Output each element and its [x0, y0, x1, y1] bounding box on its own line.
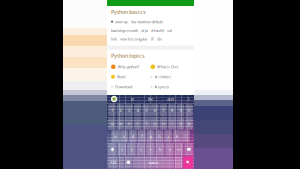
button[interactable]: i	[168, 117, 176, 129]
button[interactable]: Architect	[150, 72, 190, 82]
staticText: a	[114, 134, 116, 139]
button[interactable]: to	[129, 96, 136, 102]
button[interactable]: e	[125, 117, 133, 129]
button[interactable]: b	[156, 143, 164, 155]
button[interactable]: Why python?	[111, 62, 150, 72]
button[interactable]: m	[175, 143, 183, 155]
staticText: to	[131, 96, 134, 102]
button[interactable]: 6	[151, 104, 159, 116]
button[interactable]: 3	[125, 104, 133, 116]
button[interactable]: the	[146, 96, 155, 102]
button[interactable]: Read	[111, 72, 150, 82]
button[interactable]: Keyboard theme	[110, 95, 119, 103]
button[interactable]: and	[165, 96, 175, 102]
staticText: IF	[151, 36, 154, 42]
button[interactable]: t	[142, 117, 150, 129]
button[interactable]: 0	[185, 104, 193, 116]
button[interactable]: x	[127, 143, 136, 155]
staticText: What is Dict	[157, 64, 178, 69]
button[interactable]: Delete	[184, 143, 193, 155]
button[interactable]: j	[164, 130, 172, 142]
staticText: g	[149, 134, 151, 139]
button[interactable]: space	[133, 156, 174, 168]
staticText: Read	[117, 74, 125, 79]
button[interactable]: y	[151, 117, 159, 129]
button[interactable]: r	[134, 117, 141, 129]
staticText: u	[162, 121, 164, 126]
staticText: l	[185, 134, 186, 139]
staticText: link	[111, 36, 117, 42]
button[interactable]: IF	[151, 36, 154, 42]
button[interactable]: p	[185, 117, 193, 129]
button[interactable]: val	[167, 28, 172, 33]
button[interactable]: g	[147, 130, 154, 142]
button[interactable]: 1	[108, 104, 116, 116]
button[interactable]: 4	[134, 104, 141, 116]
button[interactable]: unwrap	[111, 19, 128, 24]
staticText: h	[158, 134, 160, 139]
button[interactable]: s	[120, 130, 128, 142]
button[interactable]: div	[157, 36, 162, 42]
button[interactable]: u	[160, 117, 167, 129]
staticText: y	[154, 121, 156, 126]
staticText: bad align month	[111, 28, 138, 33]
staticText: has boolean default	[131, 19, 163, 24]
staticText: n	[168, 147, 170, 152]
button[interactable]: 5	[142, 104, 150, 116]
staticText: Python basics	[111, 8, 146, 16]
button[interactable]: new list singular	[120, 36, 148, 42]
staticText: .	[121, 160, 122, 165]
staticText: 0	[188, 107, 190, 113]
button[interactable]: k	[173, 130, 181, 142]
staticText: t	[146, 121, 147, 126]
button[interactable]: Shift	[108, 143, 117, 155]
button[interactable]: c	[137, 143, 145, 155]
button[interactable]: Emoji	[125, 156, 132, 168]
staticText: 7	[162, 107, 164, 113]
button[interactable]: #hash()	[151, 28, 164, 33]
staticText: ,	[178, 160, 179, 165]
button[interactable]: Period	[119, 156, 124, 168]
button[interactable]: d	[129, 130, 137, 142]
button[interactable]: 2	[117, 104, 124, 116]
staticText: Python topics	[111, 52, 145, 59]
staticText: z	[121, 147, 123, 152]
button[interactable]: w	[117, 117, 124, 129]
staticText: val	[167, 28, 172, 33]
staticText: unwrap	[115, 19, 128, 24]
staticText: Download	[115, 84, 132, 89]
button[interactable]: a	[111, 130, 119, 142]
button[interactable]: Search	[183, 156, 193, 168]
button[interactable]: Asyncio	[150, 82, 190, 92]
button[interactable]: bad align month	[111, 28, 138, 33]
button[interactable]: v	[146, 143, 155, 155]
button[interactable]: Comma	[175, 156, 182, 168]
button[interactable]: I	[185, 96, 191, 102]
button[interactable]: n	[165, 143, 174, 155]
button[interactable]: of pi	[141, 28, 148, 33]
staticText: 5	[145, 107, 147, 113]
button[interactable]: q	[108, 117, 116, 129]
staticText: r	[137, 121, 139, 126]
staticText: the	[148, 96, 153, 102]
staticText: k	[176, 134, 178, 139]
button[interactable]: z	[118, 143, 126, 155]
button[interactable]: has boolean default	[131, 19, 163, 24]
staticText: 2	[119, 107, 121, 113]
staticText: new list singular	[120, 36, 148, 42]
button[interactable]: 9	[177, 104, 184, 116]
staticText: o	[179, 121, 181, 126]
button[interactable]: link	[111, 36, 117, 42]
staticText: c	[140, 147, 142, 152]
button[interactable]: 8	[168, 104, 176, 116]
button[interactable]: o	[177, 117, 184, 129]
button[interactable]: 7	[160, 104, 167, 116]
button[interactable]: What is Dict	[150, 62, 190, 72]
staticText: 3	[128, 107, 130, 113]
button[interactable]: l	[182, 130, 190, 142]
button[interactable]: Download	[111, 82, 150, 92]
button[interactable]: Numbers	[108, 156, 118, 168]
staticText: and	[167, 96, 173, 102]
button[interactable]: f	[138, 130, 145, 142]
button[interactable]: h	[155, 130, 163, 142]
